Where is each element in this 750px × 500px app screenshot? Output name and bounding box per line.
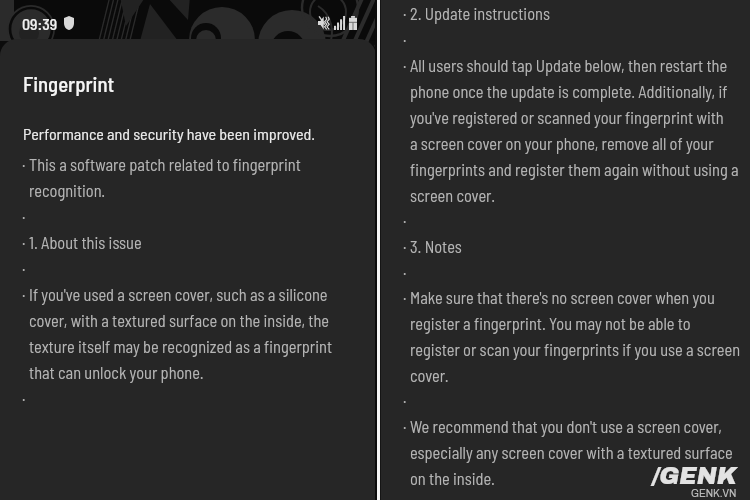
staticText: · bbox=[22, 253, 26, 279]
staticText: · bbox=[22, 227, 26, 253]
staticText: · bbox=[403, 0, 407, 24]
staticText: · bbox=[22, 201, 26, 227]
staticText: · bbox=[403, 385, 407, 411]
staticText: · bbox=[403, 231, 407, 257]
staticText: /GENK bbox=[652, 463, 737, 489]
other: Battery bbox=[349, 16, 357, 30]
staticText: Fingerprint bbox=[23, 71, 115, 96]
staticText: · bbox=[403, 24, 407, 50]
staticText: GENK.VN bbox=[691, 488, 737, 499]
staticText: 2. Update instructions bbox=[410, 0, 550, 24]
staticText: If you've used a screen cover, such as a… bbox=[29, 279, 333, 383]
staticText: · bbox=[403, 50, 407, 76]
other: Signal strength bbox=[334, 16, 345, 30]
staticText: 09:39 bbox=[22, 14, 58, 33]
other: Sound off, vibrate bbox=[318, 16, 329, 30]
staticText: · bbox=[22, 279, 26, 305]
staticText: This a software patch related to fingerp… bbox=[29, 149, 301, 201]
staticText: · bbox=[22, 383, 26, 409]
staticText: Make sure that there's no screen cover w… bbox=[410, 282, 741, 386]
staticText: · bbox=[403, 205, 407, 231]
staticText: · bbox=[403, 282, 407, 308]
staticText: · bbox=[403, 257, 407, 283]
staticText: All users should tap Update below, then … bbox=[410, 50, 739, 206]
staticText: 1. About this issue bbox=[29, 227, 142, 253]
staticText: Performance and security have been impro… bbox=[23, 124, 316, 143]
other: Secured by Knox bbox=[64, 16, 74, 30]
staticText: 3. Notes bbox=[410, 231, 462, 257]
staticText: We recommend that you don't use a screen… bbox=[410, 411, 733, 489]
staticText: · bbox=[403, 411, 407, 437]
staticText: · bbox=[22, 149, 26, 175]
